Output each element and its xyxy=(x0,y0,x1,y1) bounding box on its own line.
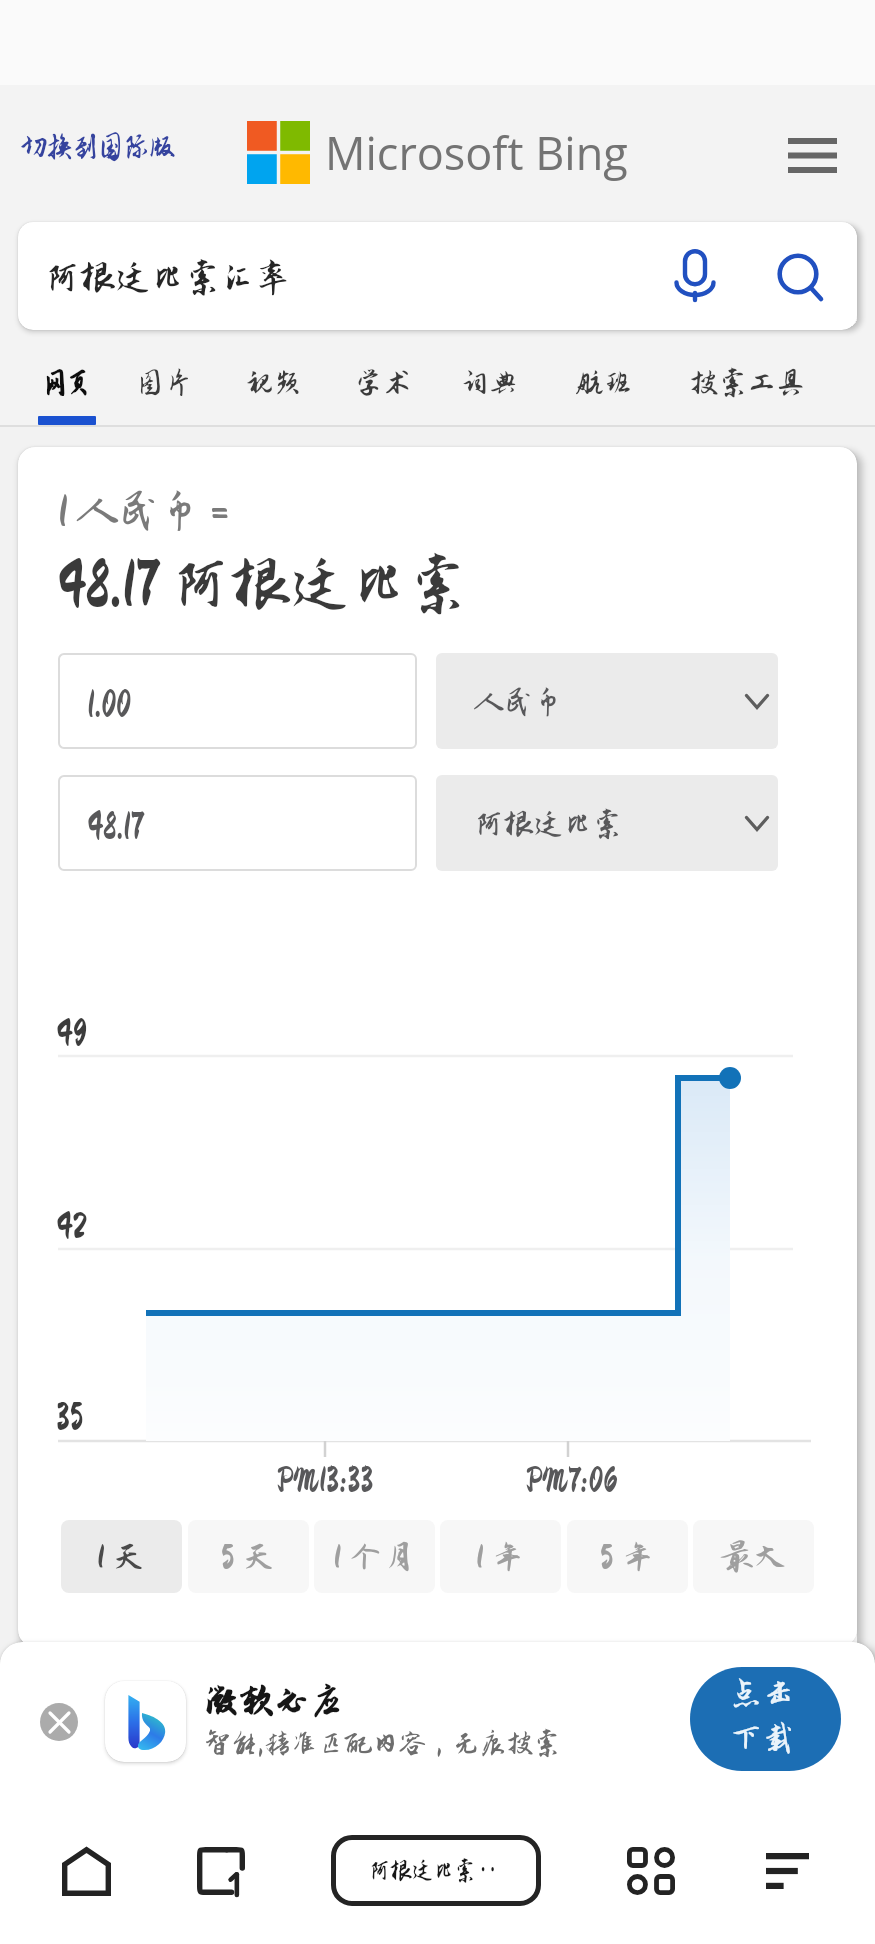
button[interactable]: 1 天 xyxy=(61,1520,182,1593)
staticText: 49 xyxy=(56,1014,87,1052)
staticText: PM7:06 xyxy=(527,1461,618,1497)
button[interactable]: 点击 xyxy=(690,1667,841,1771)
button[interactable]: Voice search xyxy=(658,239,732,313)
staticText: 阿根廷比索‥ xyxy=(369,1857,500,1884)
button[interactable]: 5 天 xyxy=(188,1520,309,1593)
staticText: 1 天 xyxy=(97,1540,146,1574)
staticText: 1 年 xyxy=(476,1540,525,1574)
staticText: 5 年 xyxy=(599,1540,656,1574)
button[interactable]: 词典 xyxy=(449,340,529,425)
button[interactable]: Home xyxy=(42,1827,130,1915)
staticText: 阿根廷比索 xyxy=(474,808,623,841)
button[interactable]: 搜索工具 xyxy=(686,340,810,425)
button[interactable]: More xyxy=(743,1827,831,1915)
button[interactable]: 5 年 xyxy=(567,1520,688,1593)
button[interactable]: 图片 xyxy=(125,340,205,425)
staticText: 阿根廷比索汇率 xyxy=(45,259,291,298)
staticText: 学术 xyxy=(354,367,412,399)
staticText: 1.00 xyxy=(87,684,131,724)
staticText: 网页 xyxy=(44,367,90,399)
button[interactable]: Bing app xyxy=(105,1681,186,1762)
staticText: 1 人民币 = xyxy=(58,489,229,535)
button[interactable]: 网页 xyxy=(27,340,107,425)
button[interactable]: 阿根廷比索 xyxy=(436,775,778,871)
staticText: PM13:33 xyxy=(278,1461,374,1497)
staticText: 42 xyxy=(56,1207,87,1245)
button[interactable]: 视频 xyxy=(234,340,314,425)
staticText: 点击 xyxy=(730,1675,795,1711)
button[interactable]: Menu xyxy=(779,122,845,188)
staticText: 48.17 xyxy=(87,806,144,846)
button[interactable]: 最大 xyxy=(693,1520,814,1593)
button[interactable]: Tabs xyxy=(177,1827,265,1915)
staticText: 下载 xyxy=(730,1720,795,1756)
staticText: 最大 xyxy=(720,1540,788,1574)
staticText: 48.17 阿根廷比索 xyxy=(57,552,469,618)
button[interactable]: 1 个月 xyxy=(314,1520,435,1593)
staticText: 5 天 xyxy=(220,1540,276,1574)
button[interactable]: 人民币 xyxy=(436,653,778,749)
staticText: 航班 xyxy=(575,367,633,399)
button[interactable]: 1.00 xyxy=(58,653,417,749)
button[interactable]: 切换到国际版 xyxy=(21,130,205,164)
staticText: 图片 xyxy=(136,367,194,399)
button[interactable]: Close ad xyxy=(40,1703,78,1741)
button[interactable]: 航班 xyxy=(564,340,644,425)
button[interactable]: 学术 xyxy=(343,340,423,425)
button[interactable]: 1 年 xyxy=(440,1520,561,1593)
button[interactable]: 阿根廷比索‥ xyxy=(331,1835,541,1906)
staticText: 微软必应 xyxy=(204,1682,345,1721)
button[interactable]: Apps xyxy=(607,1827,695,1915)
staticText: 智能,精准匹配内容，无痕搜索 xyxy=(204,1729,561,1759)
button[interactable]: 48.17 xyxy=(58,775,417,871)
staticText: 搜索工具 xyxy=(690,367,806,399)
staticText: Microsoft Bing xyxy=(325,122,628,183)
staticText: 人民币 xyxy=(474,686,564,719)
staticText: 1 个月 xyxy=(333,1540,417,1574)
staticText: 35 xyxy=(56,1398,84,1436)
button[interactable]: 阿根廷比索汇率 xyxy=(18,222,857,330)
button[interactable]: Search xyxy=(763,241,837,315)
staticText: 视频 xyxy=(245,367,303,399)
staticText: 词典 xyxy=(460,367,518,399)
